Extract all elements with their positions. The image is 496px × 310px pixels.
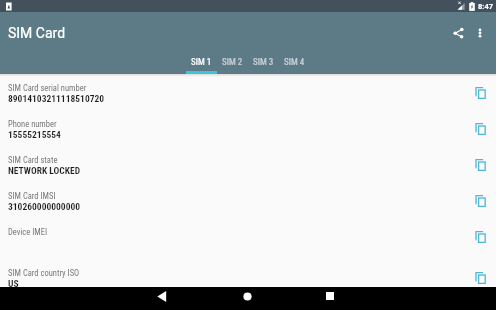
button[interactable]: SIM 2 xyxy=(217,50,248,74)
button[interactable] xyxy=(320,286,340,306)
staticText: SIM Card state xyxy=(8,155,58,165)
button[interactable] xyxy=(237,286,257,306)
button[interactable]: Device IMEI xyxy=(0,220,496,256)
button[interactable]: Phone number xyxy=(0,112,496,148)
staticText: SIM Card country ISO xyxy=(8,268,80,278)
staticText: 15555215554 xyxy=(8,129,61,140)
staticText: SIM Card serial number xyxy=(8,83,87,93)
staticText: Device IMEI xyxy=(8,227,48,237)
button[interactable]: SIM 4 xyxy=(279,50,310,74)
staticText: Phone number xyxy=(8,119,57,129)
staticText: SIM Card IMSI xyxy=(8,191,56,201)
staticText: SIM Card xyxy=(8,25,66,41)
button[interactable]: SIM Card state xyxy=(0,148,496,184)
staticText: NETWORK LOCKED xyxy=(8,165,81,176)
button[interactable]: SIM 3 xyxy=(248,50,279,74)
button[interactable]: SIM Card serial number xyxy=(0,76,496,112)
button[interactable] xyxy=(152,286,172,306)
staticText: US xyxy=(8,278,19,287)
button[interactable]: SIM Card IMSI xyxy=(0,184,496,220)
staticText: 310260000000000 xyxy=(8,201,81,212)
button[interactable] xyxy=(472,25,488,41)
staticText: SIM 4 xyxy=(284,57,305,68)
button[interactable] xyxy=(451,25,467,41)
button[interactable]: SIM 1 xyxy=(186,50,217,74)
staticText: SIM 1 xyxy=(191,57,212,68)
button[interactable]: SIM Card country ISO xyxy=(0,261,496,287)
staticText: 89014103211118510720 xyxy=(8,93,105,104)
staticText: 8:47 xyxy=(478,2,494,11)
staticText: SIM 3 xyxy=(253,57,274,68)
staticText: SIM 2 xyxy=(222,57,243,68)
